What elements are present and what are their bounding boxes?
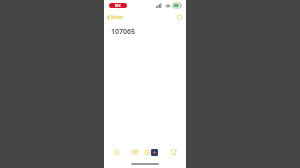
staticText: 107065 <box>111 27 136 37</box>
button[interactable]: Camera <box>145 145 162 159</box>
staticText: Notes <box>111 14 124 20</box>
button[interactable]: New note <box>167 145 180 159</box>
button[interactable]: More options <box>175 13 183 21</box>
button[interactable]: Format <box>128 145 141 159</box>
staticText: REC <box>115 4 121 8</box>
button[interactable]: Checklist <box>110 145 123 159</box>
button[interactable]: Notes <box>107 14 124 20</box>
